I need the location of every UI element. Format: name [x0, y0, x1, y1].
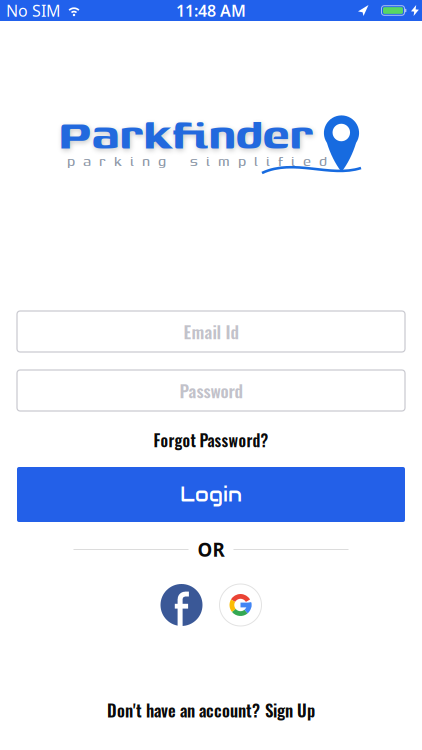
- staticText: Login: [180, 482, 242, 507]
- staticText: Don't have an account?: [107, 698, 260, 722]
- button[interactable]: Login: [17, 467, 405, 522]
- button[interactable]: Sign in with Google: [219, 584, 261, 626]
- staticText: Sign Up: [265, 698, 315, 722]
- button[interactable]: Forgot Password?: [153, 428, 268, 452]
- button[interactable]: Sign in with Facebook: [160, 584, 202, 626]
- staticText: Parkfinder: [58, 102, 313, 164]
- staticText: Email Id: [183, 319, 238, 344]
- staticText: No SIM: [6, 0, 61, 21]
- button[interactable]: Password: [17, 370, 405, 411]
- staticText: Password: [179, 378, 242, 403]
- button[interactable]: Email Id: [17, 311, 405, 352]
- staticText: p a r k i n g s i m p l i f i e d: [67, 151, 327, 171]
- staticText: Forgot Password?: [153, 428, 268, 452]
- staticText: OR: [197, 537, 224, 562]
- button[interactable]: Sign Up: [265, 698, 315, 722]
- staticText: 11:48 AM: [176, 0, 246, 21]
